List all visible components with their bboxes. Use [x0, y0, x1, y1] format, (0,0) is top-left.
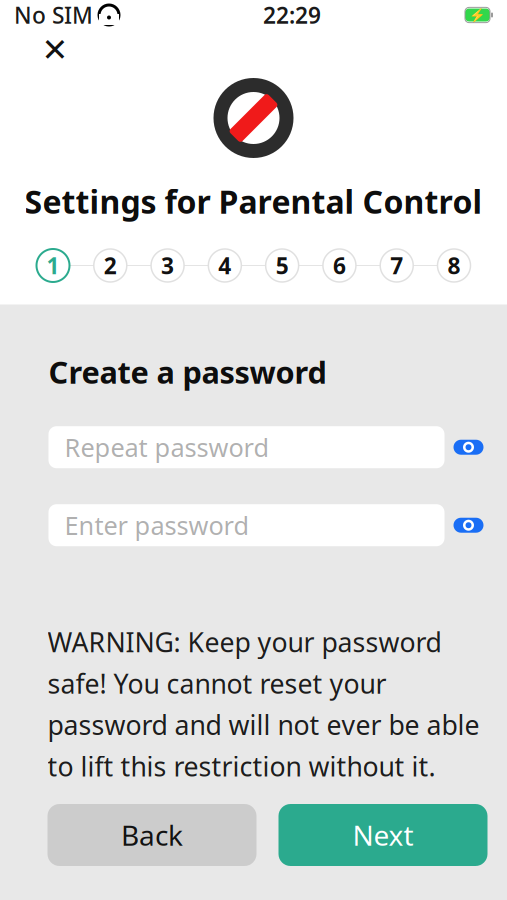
staticText: ✕ [41, 32, 68, 68]
staticText: Settings for Parental Control [24, 180, 482, 222]
staticText: No SIM [14, 0, 93, 30]
staticText: 8 [447, 250, 460, 280]
button[interactable]: Next [278, 804, 487, 866]
staticText: 5 [276, 250, 289, 280]
button[interactable]: Repeat password [48, 426, 444, 468]
button[interactable]: Show Enter password [444, 504, 492, 546]
staticText: Repeat password [64, 430, 269, 464]
staticText: Enter password [64, 508, 249, 542]
button[interactable]: Close [33, 30, 77, 70]
staticText: 1 [46, 250, 59, 280]
button[interactable]: 2 [93, 248, 127, 282]
button[interactable]: 4 [208, 248, 242, 282]
button[interactable]: 7 [380, 248, 414, 282]
button[interactable]: 8 [437, 248, 471, 282]
staticText: Create a password [48, 351, 326, 392]
staticText: 3 [161, 250, 174, 280]
button[interactable]: Enter password [48, 504, 444, 546]
button[interactable]: 5 [265, 248, 299, 282]
staticText: WARNING: Keep your password safe! You ca… [47, 624, 479, 784]
staticText: 2 [104, 250, 117, 280]
button[interactable]: 1 [36, 248, 70, 282]
staticText: 4 [218, 250, 231, 280]
staticText: 22:29 [263, 0, 321, 30]
button[interactable]: 3 [151, 248, 185, 282]
staticText: Back [121, 816, 183, 854]
staticText: ⚡ [469, 7, 486, 23]
staticText: 7 [390, 250, 403, 280]
button[interactable]: Show Repeat password [444, 426, 492, 468]
button[interactable]: 6 [322, 248, 356, 282]
staticText: 6 [333, 250, 346, 280]
button[interactable]: Back [47, 804, 256, 866]
staticText: Next [352, 816, 413, 854]
